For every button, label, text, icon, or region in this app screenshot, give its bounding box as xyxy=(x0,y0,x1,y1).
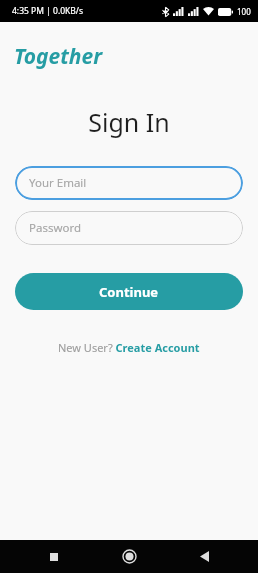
staticText: 100 xyxy=(237,6,251,17)
staticText: Your Email xyxy=(29,175,87,191)
staticText: Sign In xyxy=(0,105,258,139)
button[interactable]: Your Email xyxy=(15,166,243,200)
button[interactable]: Back xyxy=(183,540,225,573)
staticText: Password xyxy=(29,220,82,236)
button[interactable]: New User? Create Account xyxy=(56,338,202,357)
staticText: Together xyxy=(14,42,103,71)
staticText: New User? Create Account xyxy=(58,340,200,355)
button[interactable]: Recent apps xyxy=(33,540,75,573)
staticText: 4:35 PM | 0.0KB/s xyxy=(12,5,84,17)
button[interactable]: Home xyxy=(108,540,150,573)
button[interactable]: Password xyxy=(15,211,243,245)
staticText: Continue xyxy=(99,283,159,301)
button[interactable]: Continue xyxy=(15,273,243,310)
